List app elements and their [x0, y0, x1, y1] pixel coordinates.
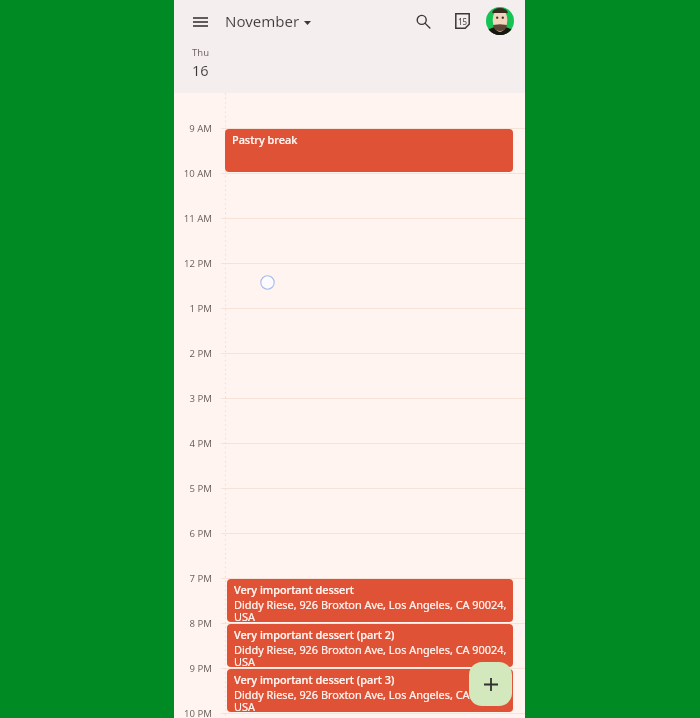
staticText: 7 PM	[174, 572, 212, 585]
staticText: 5 PM	[174, 482, 212, 495]
staticText: 9 PM	[174, 662, 212, 675]
button[interactable]: Pastry break	[225, 129, 513, 172]
staticText: Very important dessert	[234, 582, 355, 597]
button[interactable]: November	[219, 4, 318, 38]
button[interactable]: Search	[409, 7, 437, 35]
staticText: 6 PM	[174, 527, 212, 540]
button[interactable]: Very important dessert (part 3)	[227, 669, 513, 712]
staticText: 1 PM	[174, 302, 212, 315]
staticText: 15	[458, 16, 468, 27]
staticText: 16	[192, 60, 209, 80]
staticText: Diddy Riese, 926 Broxton Ave, Los Angele…	[234, 642, 511, 667]
staticText: 12 PM	[174, 257, 212, 270]
staticText: 2 PM	[174, 347, 212, 360]
staticText: 4 PM	[174, 437, 212, 450]
staticText: Thu	[192, 46, 210, 59]
staticText: 10 AM	[174, 167, 212, 180]
staticText: Diddy Riese, 926 Broxton Ave, Los Angele…	[234, 687, 511, 712]
staticText: Very important dessert (part 3)	[234, 672, 395, 687]
staticText: 3 PM	[174, 392, 212, 405]
button[interactable]: Very important dessert (part 2)	[227, 624, 513, 667]
staticText: Very important dessert (part 2)	[234, 627, 395, 642]
button[interactable]: Very important dessert	[227, 579, 513, 622]
staticText: 9 AM	[174, 122, 212, 135]
staticText: 10 PM	[174, 707, 212, 718]
staticText: 11 AM	[174, 212, 212, 225]
button[interactable]: Menu	[186, 8, 214, 36]
staticText: November	[225, 11, 300, 31]
button[interactable]: Create event	[469, 662, 512, 706]
button[interactable]: Account	[486, 7, 514, 35]
button[interactable]: Today	[448, 7, 476, 35]
staticText: Diddy Riese, 926 Broxton Ave, Los Angele…	[234, 597, 511, 622]
staticText: Pastry break	[232, 132, 298, 147]
staticText: 8 PM	[174, 617, 212, 630]
